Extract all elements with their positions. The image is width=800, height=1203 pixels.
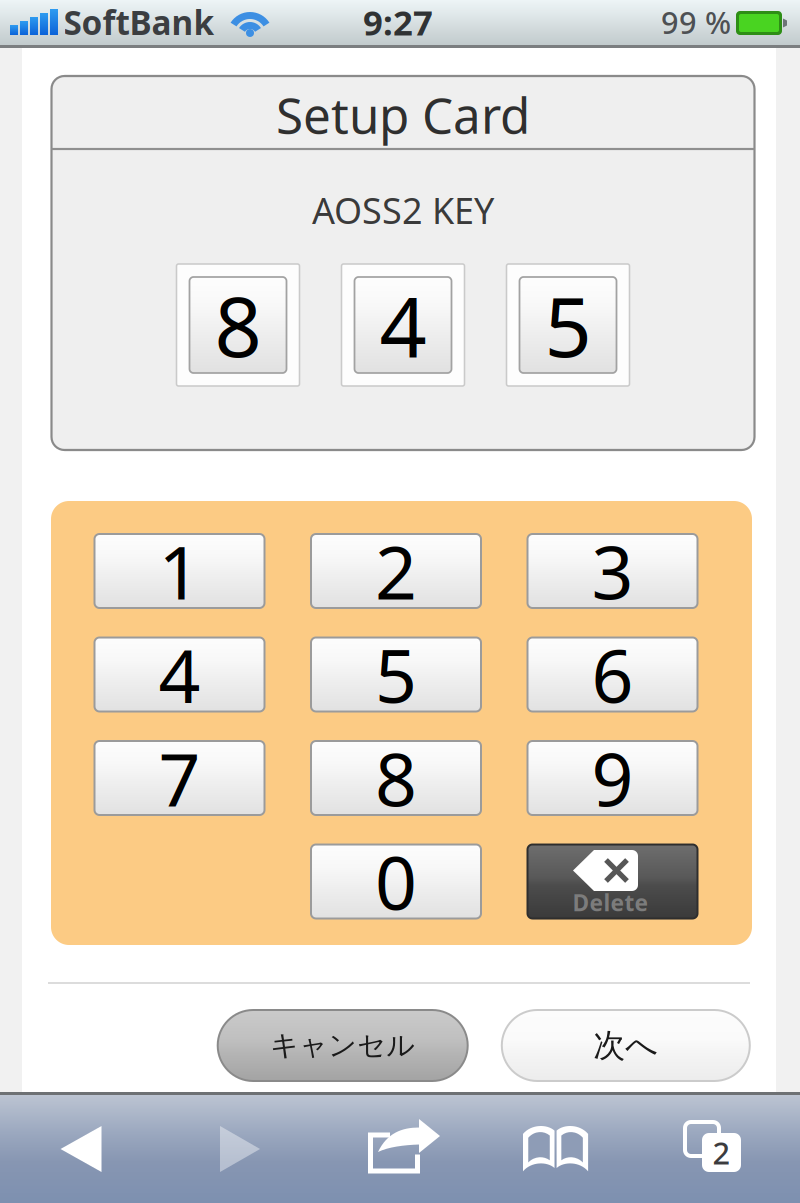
staticText: 8 — [375, 729, 417, 827]
staticText: Delete — [572, 887, 648, 917]
staticText: 8 — [214, 270, 261, 380]
button[interactable]: 0 — [311, 844, 481, 918]
button[interactable]: Tabs, 2 open — [643, 1094, 783, 1200]
staticText: キャンセル — [270, 1028, 415, 1063]
staticText: 3 — [591, 522, 633, 620]
button[interactable]: Delete — [527, 844, 697, 918]
staticText: 7 — [158, 729, 200, 827]
staticText: 4 — [379, 270, 426, 380]
staticText: AOSS2 KEY — [312, 186, 494, 234]
staticText: 次へ — [593, 1026, 658, 1065]
button[interactable]: 4 — [94, 637, 264, 711]
staticText: 4 — [158, 626, 200, 723]
staticText: 1 — [158, 522, 200, 620]
button[interactable]: 9 — [527, 741, 697, 815]
staticText: SoftBank — [63, 0, 214, 44]
staticText: Setup Card — [276, 82, 530, 147]
button[interactable]: 8 — [311, 741, 481, 815]
button[interactable]: 5 — [311, 637, 481, 711]
button[interactable]: Bookmarks — [485, 1095, 625, 1201]
staticText: 9:27 — [363, 0, 433, 45]
button[interactable]: 1 — [94, 534, 264, 608]
button[interactable]: 2 — [311, 534, 481, 608]
button[interactable]: 6 — [527, 637, 697, 711]
staticText: 2 — [712, 1132, 730, 1173]
button[interactable]: Back — [11, 1096, 151, 1202]
button[interactable]: 3 — [527, 534, 697, 608]
button[interactable]: 次へ — [502, 1010, 750, 1081]
button[interactable]: Share — [334, 1093, 474, 1199]
button[interactable]: Forward — [170, 1096, 310, 1202]
staticText: 5 — [375, 626, 417, 723]
staticText: 6 — [591, 626, 633, 723]
staticText: 0 — [375, 833, 417, 930]
button[interactable]: キャンセル — [218, 1010, 468, 1081]
button[interactable]: 7 — [94, 741, 264, 815]
staticText: 9 — [591, 729, 633, 827]
staticText: 2 — [375, 522, 417, 620]
staticText: 99 % — [661, 2, 731, 42]
staticText: 5 — [544, 270, 591, 380]
